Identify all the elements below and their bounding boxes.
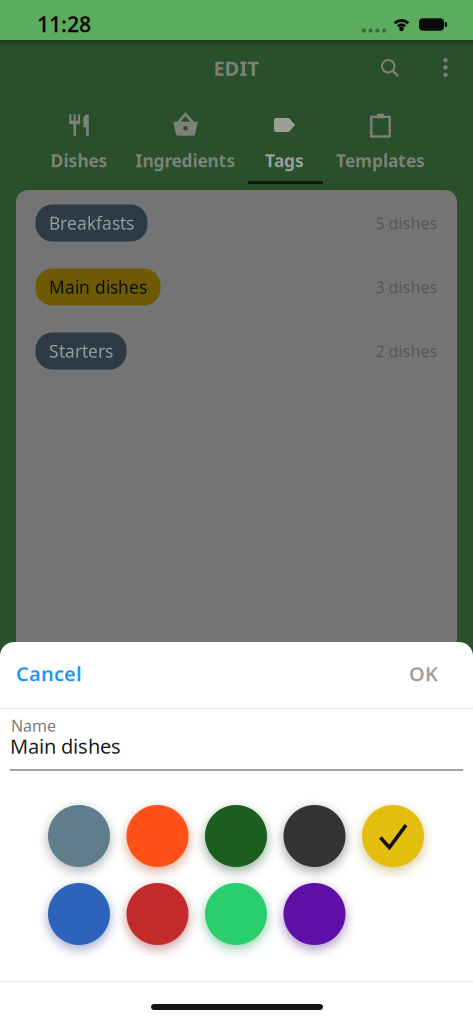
- staticText: Templates: [336, 149, 425, 172]
- staticText: 2 dishes: [375, 340, 437, 362]
- button[interactable]: Blue color: [48, 883, 110, 945]
- staticText: Dishes: [50, 149, 107, 172]
- staticText: Cancel: [16, 660, 82, 687]
- button[interactable]: Tags: [265, 101, 304, 179]
- staticText: Tags: [265, 149, 304, 172]
- staticText: Main dishes: [10, 733, 121, 759]
- staticText: EDIT: [213, 55, 259, 81]
- button[interactable]: Cancel: [2, 644, 96, 703]
- button[interactable]: Yellow color, selected: [362, 805, 424, 867]
- button[interactable]: Templates: [336, 101, 425, 179]
- staticText: OK: [409, 660, 438, 687]
- staticText: Starters: [49, 339, 113, 362]
- button[interactable]: Red color: [126, 883, 188, 945]
- button[interactable]: Ingredients: [135, 101, 235, 179]
- button[interactable]: Blue-grey color: [48, 805, 110, 867]
- staticText: Breakfasts: [49, 211, 134, 234]
- staticText: 5 dishes: [375, 212, 437, 234]
- staticText: Ingredients: [135, 149, 235, 172]
- button[interactable]: Purple color: [283, 883, 345, 945]
- button[interactable]: Breakfasts: [35, 191, 437, 255]
- button[interactable]: Dishes: [50, 101, 107, 179]
- button[interactable]: Dark grey color: [283, 805, 345, 867]
- button[interactable]: Dark green color: [205, 805, 267, 867]
- staticText: 11:28: [37, 10, 91, 38]
- staticText: 3 dishes: [375, 276, 437, 298]
- button[interactable]: More options: [427, 45, 463, 89]
- button[interactable]: OK: [395, 644, 452, 703]
- button[interactable]: Search: [367, 45, 411, 89]
- button[interactable]: Main dishes: [35, 255, 437, 319]
- button[interactable]: Orange color: [126, 805, 188, 867]
- staticText: Name: [11, 715, 56, 736]
- button[interactable]: Green color: [205, 883, 267, 945]
- button[interactable]: Starters: [35, 319, 437, 383]
- staticText: Main dishes: [49, 275, 147, 298]
